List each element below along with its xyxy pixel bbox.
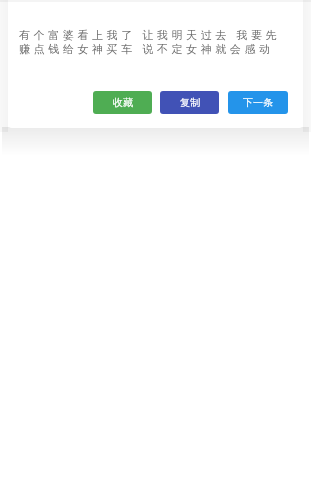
staticText: 复制 [180,96,200,109]
staticText: 收藏 [113,96,133,109]
staticText: 下一条 [243,96,273,109]
button[interactable]: 下一条 [228,91,288,114]
button[interactable]: 复制 [160,91,219,114]
staticText: 有个富婆看上我了 让我明天过去 我要先赚点钱给女神买车 说不定女神就会感动 [19,27,292,57]
button[interactable]: 收藏 [93,91,152,114]
